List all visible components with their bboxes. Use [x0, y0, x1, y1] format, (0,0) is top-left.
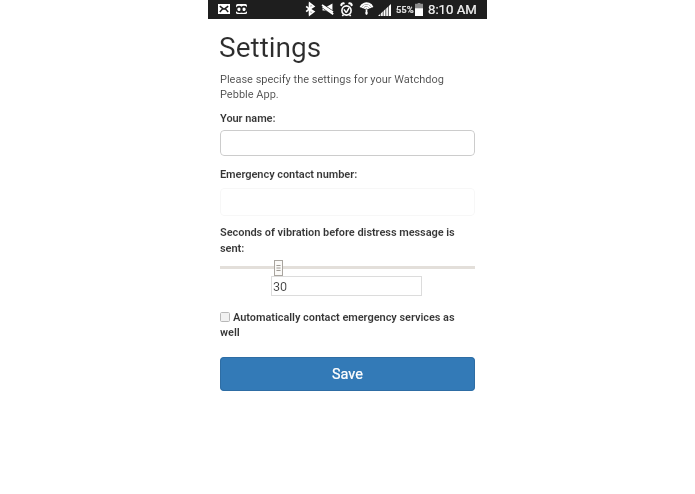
button[interactable]: Save — [220, 357, 475, 391]
button[interactable]: Your name input — [220, 130, 475, 156]
staticText: Settings — [219, 31, 322, 64]
staticText: Pebble App. — [220, 88, 279, 101]
button[interactable]: Vibration seconds slider — [274, 260, 283, 276]
staticText: 8:10 AM — [428, 2, 477, 17]
staticText: Automatically contact emergency services… — [233, 311, 455, 324]
staticText: Seconds of vibration before distress mes… — [220, 226, 455, 239]
staticText: 55% — [396, 4, 414, 15]
staticText: Save — [332, 366, 363, 383]
staticText: 30 — [273, 279, 288, 294]
staticText: sent: — [220, 242, 245, 255]
button[interactable]: Automatically contact emergency services… — [220, 309, 475, 338]
staticText: Your name: — [220, 112, 276, 125]
staticText: Emergency contact number: — [220, 168, 358, 181]
staticText: Please specify the settings for your Wat… — [220, 73, 444, 86]
button[interactable]: Seconds value — [271, 276, 422, 296]
staticText: well — [220, 326, 240, 339]
